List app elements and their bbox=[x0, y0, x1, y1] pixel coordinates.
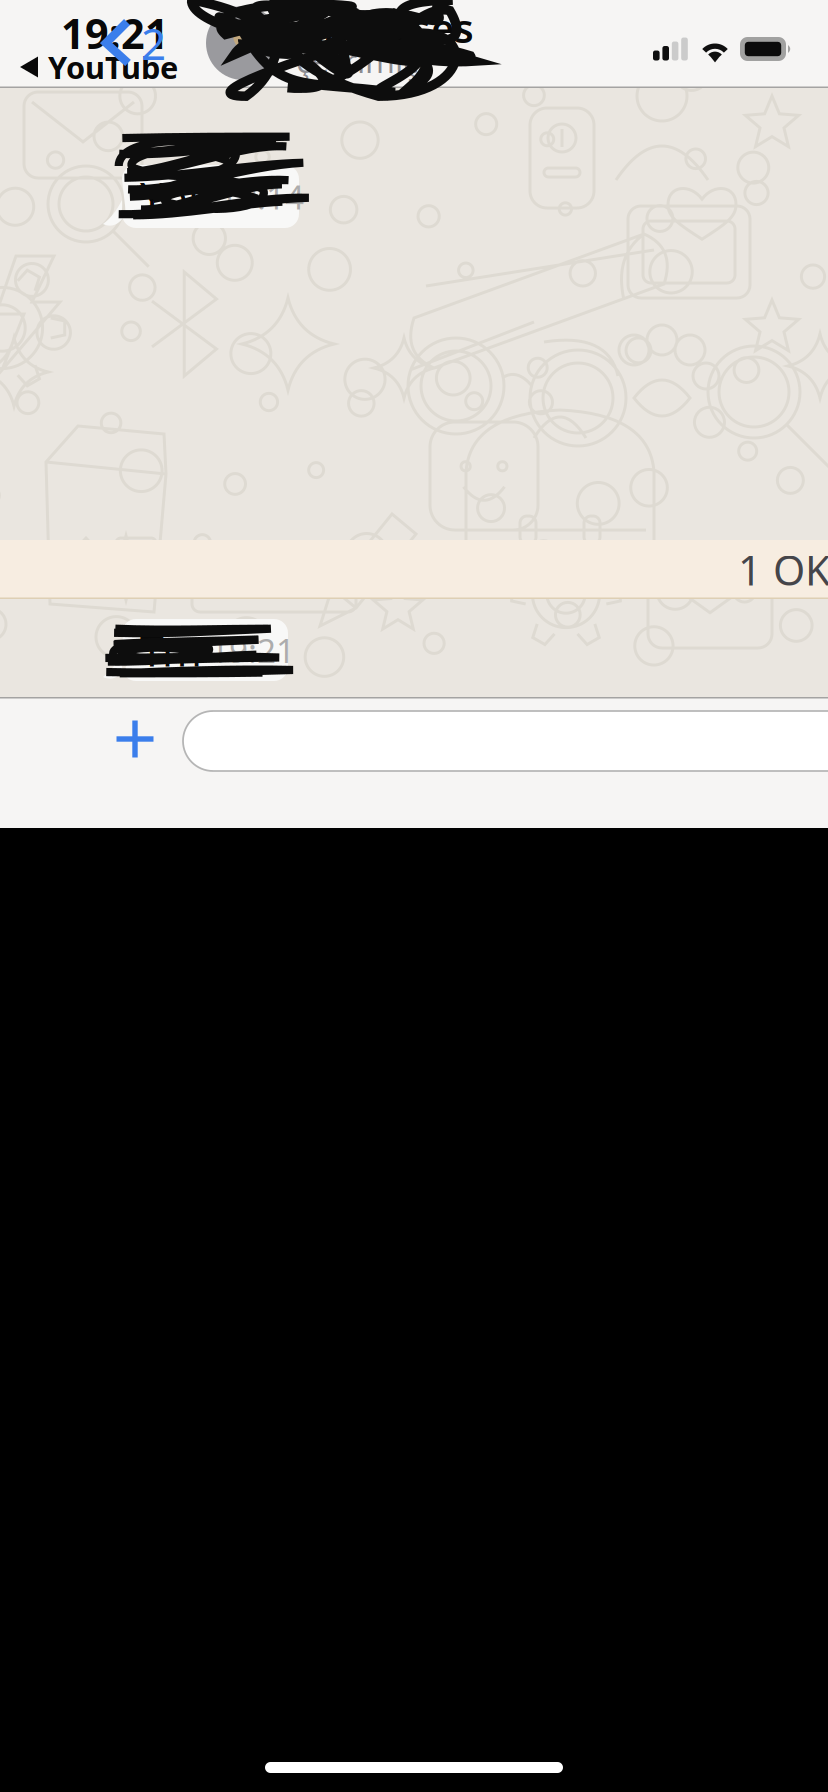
staticText: 19:14 bbox=[219, 174, 304, 219]
staticText: Tm bbox=[140, 622, 202, 678]
staticText: 1 OKUNMAMIŞ MESAJ bbox=[738, 542, 828, 597]
button[interactable]: Profil fotoğrafı bbox=[206, 6, 280, 80]
button[interactable]: Mesaj yaz bbox=[183, 711, 828, 771]
staticText: 19:21 bbox=[210, 628, 295, 672]
staticText: 2 bbox=[141, 14, 166, 72]
staticText: YouTube bbox=[48, 47, 178, 87]
staticText: Anıl Uses bbox=[296, 1, 474, 54]
button[interactable]: Ekle bbox=[95, 699, 175, 779]
button[interactable]: Sohbet bilgileri bbox=[296, 8, 556, 76]
staticText: 19:21 bbox=[61, 6, 169, 60]
staticText: çevrimiçi bbox=[296, 39, 426, 82]
staticText: Yok bbox=[140, 168, 211, 225]
button[interactable]: Geri bbox=[102, 0, 184, 72]
